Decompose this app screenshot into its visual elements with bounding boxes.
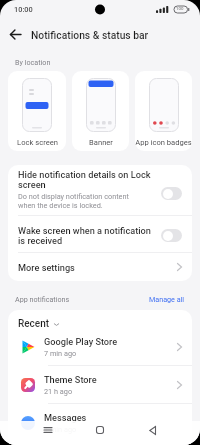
staticText: Wake screen when a notification is recei… — [18, 226, 161, 246]
staticText: Hide notification details on Lock screen — [18, 170, 151, 190]
button[interactable] — [22, 421, 74, 439]
staticText: 100 — [176, 6, 184, 11]
button[interactable] — [0, 19, 31, 50]
button[interactable]: Banner — [72, 71, 129, 151]
button[interactable]: Hide notification details on Lock screen — [8, 165, 192, 215]
staticText: 10:00 — [14, 5, 33, 14]
staticText: Google Play Store — [44, 336, 118, 347]
button[interactable]: Google Play Store — [8, 328, 192, 365]
button[interactable]: Lock screen — [8, 71, 66, 151]
staticText: 1 min ago — [44, 425, 77, 434]
button[interactable] — [74, 421, 126, 439]
staticText: App icon badges — [135, 138, 192, 147]
button[interactable]: Manage all — [149, 295, 185, 303]
staticText: Notifications & status bar — [31, 29, 149, 41]
button[interactable]: Messages — [8, 404, 192, 441]
button[interactable] — [126, 421, 178, 439]
staticText: 7 min ago — [44, 349, 77, 358]
staticText: Theme Store — [44, 374, 97, 385]
staticText: Messages — [44, 412, 87, 423]
staticText: 21 h ago — [44, 387, 73, 396]
staticText: By location — [15, 58, 51, 66]
button[interactable]: App icon badges — [135, 71, 192, 151]
button[interactable] — [161, 187, 182, 200]
staticText: Banner — [89, 138, 113, 147]
button[interactable]: More settings — [8, 253, 192, 281]
staticText: More settings — [18, 262, 177, 273]
button[interactable] — [161, 229, 182, 242]
button[interactable]: Theme Store — [8, 366, 192, 403]
staticText: Recent — [18, 318, 50, 330]
staticText: App notifications — [15, 295, 149, 303]
button[interactable]: Wake screen when a notification is recei… — [8, 216, 192, 252]
staticText: Do not display notification content when… — [18, 192, 129, 210]
button[interactable]: Recent — [18, 315, 59, 333]
staticText: Lock screen — [17, 138, 58, 147]
